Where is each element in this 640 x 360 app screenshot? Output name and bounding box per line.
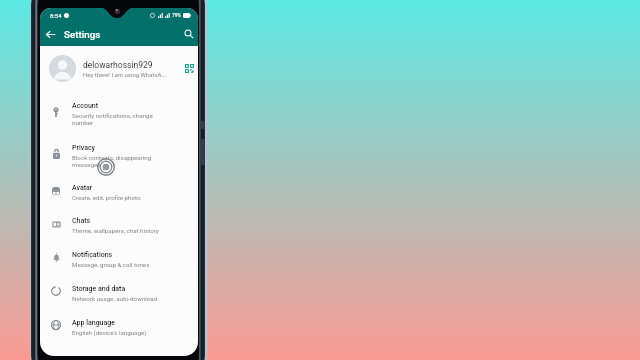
button[interactable]: Storage and data bbox=[40, 276, 198, 310]
button[interactable]: Privacy bbox=[40, 135, 198, 176]
staticText: Notifications bbox=[72, 251, 113, 259]
staticText: 79% bbox=[172, 12, 182, 18]
staticText: Storage and data bbox=[72, 285, 126, 293]
button[interactable]: Back bbox=[42, 26, 58, 42]
button[interactable]: QR code bbox=[183, 62, 196, 75]
staticText: Hey there! I am using WhatsA... bbox=[83, 71, 167, 78]
staticText: Create, edit, profile photo bbox=[72, 194, 141, 201]
staticText: Account bbox=[72, 102, 99, 110]
staticText: Chats bbox=[72, 217, 91, 225]
staticText: Security notifications, change number bbox=[72, 112, 153, 126]
staticText: App language bbox=[72, 319, 115, 327]
staticText: Theme, wallpapers, chat history bbox=[72, 227, 159, 234]
staticText: Block contacts, disappearing messages bbox=[72, 154, 152, 168]
staticText: Settings bbox=[64, 29, 101, 40]
staticText: Privacy bbox=[72, 144, 96, 152]
button[interactable]: Chats bbox=[40, 209, 198, 242]
button[interactable]: Avatar bbox=[40, 176, 198, 209]
button[interactable]: Account bbox=[40, 92, 198, 135]
staticText: Network usage, auto-download bbox=[72, 295, 158, 302]
button[interactable]: delowarhossin929 bbox=[40, 46, 198, 92]
staticText: Message, group & call tones bbox=[72, 261, 150, 268]
staticText: Avatar bbox=[72, 184, 93, 192]
button[interactable]: App language bbox=[40, 310, 198, 344]
staticText: delowarhossin929 bbox=[83, 60, 153, 70]
button[interactable]: Search bbox=[181, 26, 197, 42]
staticText: 8:54 bbox=[50, 12, 62, 19]
staticText: English (device's language) bbox=[72, 329, 147, 336]
button[interactable]: Notifications bbox=[40, 242, 198, 276]
